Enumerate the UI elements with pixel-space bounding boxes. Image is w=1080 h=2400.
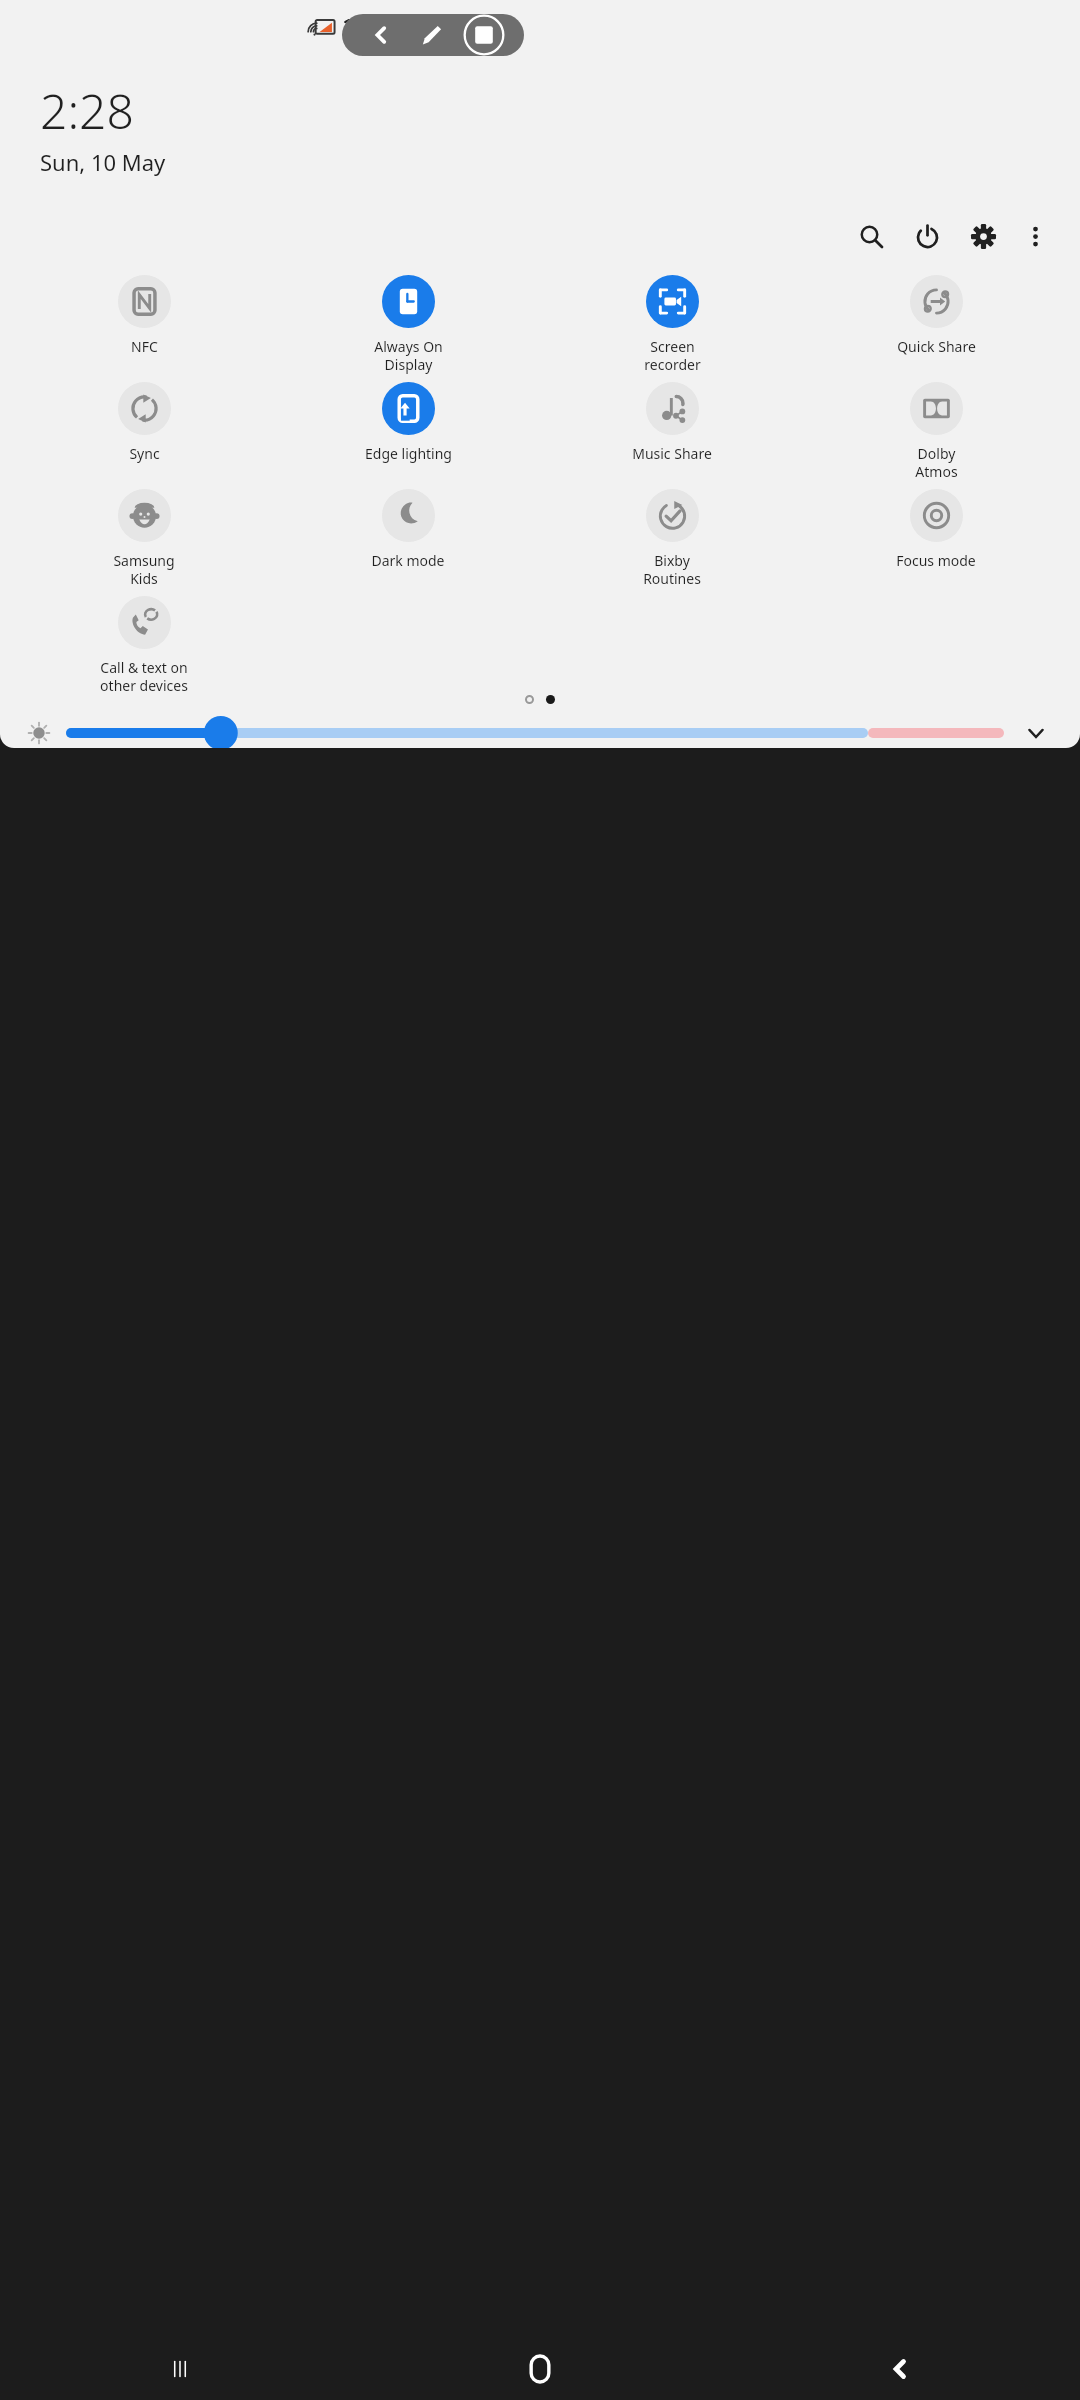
staticText: Quick Share <box>897 337 976 356</box>
staticText: Focus mode <box>896 551 976 570</box>
button[interactable]: Dark mode <box>276 489 540 570</box>
button[interactable]: Power <box>906 215 948 257</box>
button[interactable]: Call & text on other devices <box>12 596 276 695</box>
button[interactable]: Sync <box>12 382 276 463</box>
button[interactable]: Music Share <box>540 382 804 463</box>
staticText: Sync <box>129 444 160 463</box>
button[interactable]: Home <box>360 2338 720 2400</box>
staticText: Edge lighting <box>365 444 452 463</box>
button[interactable]: Draw <box>411 15 451 55</box>
button[interactable]: Recents <box>0 2338 360 2400</box>
button[interactable]: Stop recording <box>462 14 506 56</box>
button[interactable]: More options <box>1014 215 1056 257</box>
button[interactable]: Always On Display <box>276 275 540 374</box>
staticText: Samsung Kids <box>113 551 175 588</box>
staticText: Call & text on other devices <box>100 658 188 695</box>
button[interactable]: Back <box>361 15 401 55</box>
button[interactable]: Expand brightness settings <box>1018 717 1054 748</box>
staticText: Dolby Atmos <box>915 444 958 481</box>
button[interactable]: Edge lighting <box>276 382 540 463</box>
button[interactable]: Quick Share <box>804 275 1068 356</box>
staticText: Bixby Routines <box>643 551 701 588</box>
staticText: 49% <box>420 19 448 38</box>
staticText: Screen recorder <box>644 337 701 374</box>
staticText: 2:28 <box>40 78 134 143</box>
button[interactable]: Bixby Routines <box>540 489 804 588</box>
button[interactable]: Samsung Kids <box>12 489 276 588</box>
button[interactable]: Back <box>720 2338 1080 2400</box>
button[interactable]: Dolby Atmos <box>804 382 1068 481</box>
staticText: Always On Display <box>374 337 443 374</box>
button[interactable]: Search <box>850 215 892 257</box>
staticText: Music Share <box>632 444 712 463</box>
button[interactable]: NFC <box>12 275 276 356</box>
staticText: NFC <box>131 337 158 356</box>
button[interactable]: Screen recorder <box>540 275 804 374</box>
staticText: Dark mode <box>371 551 445 570</box>
button[interactable]: Focus mode <box>804 489 1068 570</box>
button[interactable]: Settings <box>962 215 1004 257</box>
staticText: Sun, 10 May <box>40 147 166 177</box>
